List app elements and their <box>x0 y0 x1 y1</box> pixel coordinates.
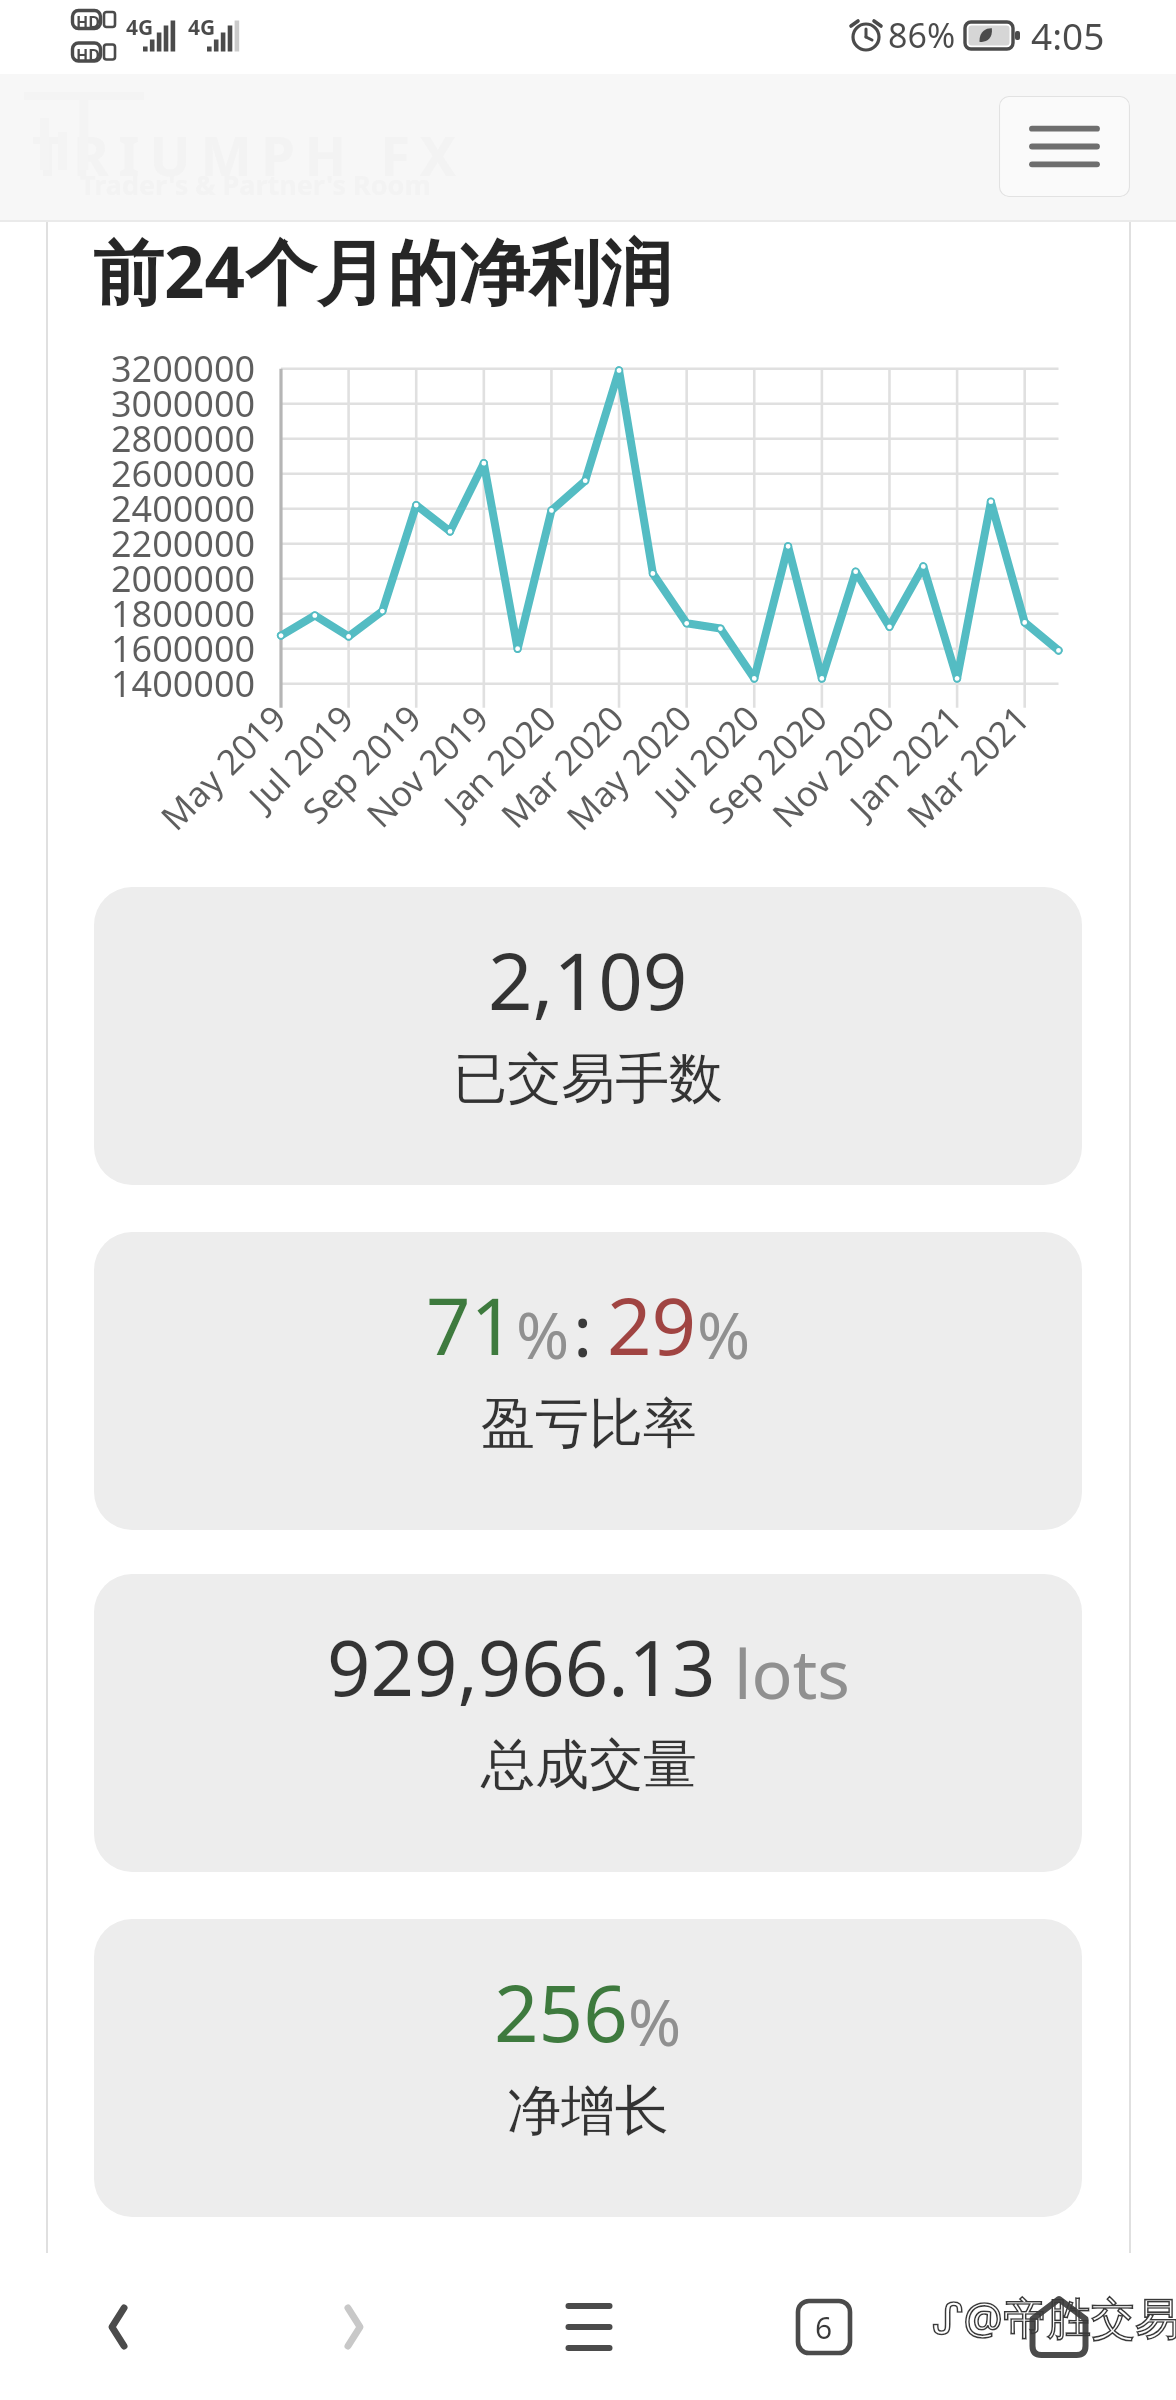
staticText: 已交易手数 <box>453 1045 723 1113</box>
staticText: 总成交量 <box>481 1731 697 1799</box>
button[interactable]: Back <box>0 2253 236 2400</box>
staticText: lots <box>734 1626 850 1719</box>
button[interactable]: Menu <box>471 2253 706 2400</box>
staticText: 前24个月的净利润 <box>93 222 672 319</box>
staticText: 盈亏比率 <box>481 1390 697 1458</box>
staticText: : <box>573 1280 593 1378</box>
staticText: % <box>697 1291 751 1378</box>
staticText: 2,109 <box>488 927 688 1033</box>
staticText: % <box>628 1978 682 2065</box>
button[interactable]: 929,966.13 <box>94 1574 1082 1872</box>
staticText: HD <box>76 11 100 33</box>
staticText: 6 <box>815 2307 833 2348</box>
staticText: % <box>516 1291 570 1378</box>
staticText: 929,966.13 <box>327 1615 716 1719</box>
button[interactable]: Home <box>941 2253 1176 2400</box>
staticText: 256 <box>494 1959 628 2065</box>
staticText: 29 <box>607 1272 697 1378</box>
staticText: 4G <box>126 13 154 42</box>
staticText: 71 <box>426 1272 516 1378</box>
staticText: 86% <box>888 12 956 58</box>
staticText: HD <box>76 44 100 66</box>
staticText: 4G <box>188 13 216 42</box>
button[interactable]: Tabs: 6 open <box>706 2253 941 2400</box>
button[interactable]: Open menu <box>999 96 1130 197</box>
button[interactable]: Forward <box>236 2253 471 2400</box>
button[interactable]: 2,109 <box>94 887 1082 1185</box>
staticText: 净增长 <box>507 2077 669 2145</box>
button[interactable]: 256 <box>94 1919 1082 2217</box>
button[interactable]: 71 <box>94 1232 1082 1530</box>
staticText: 4:05 <box>1031 10 1105 60</box>
